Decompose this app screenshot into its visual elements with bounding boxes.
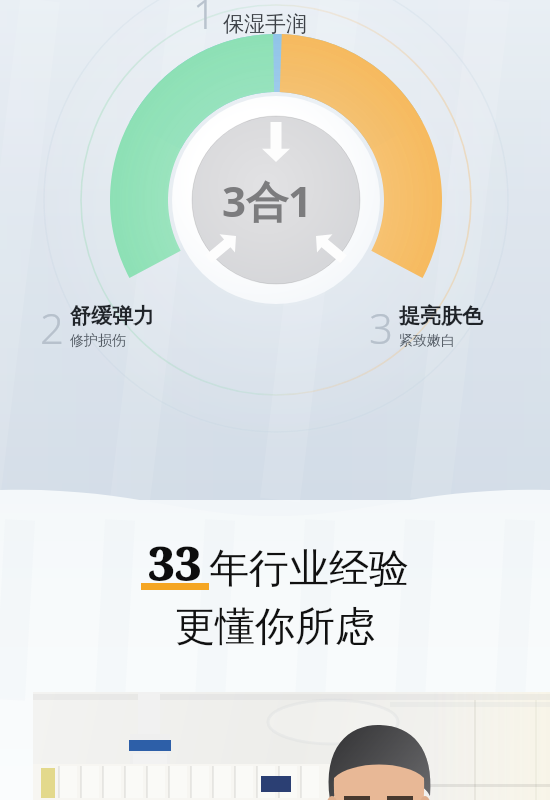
- staticText: 保湿手润: [223, 11, 307, 37]
- button[interactable]: 3: [369, 303, 483, 360]
- staticText: 3合1: [222, 172, 313, 229]
- staticText: 紧致嫩白: [399, 332, 455, 350]
- staticText: 更懂你所虑: [175, 601, 375, 651]
- staticText: 33: [148, 531, 202, 595]
- staticText: 舒缓弹力: [70, 303, 154, 329]
- staticText: 3: [369, 299, 393, 356]
- staticText: 修护损伤: [70, 332, 126, 350]
- staticText: 1: [193, 0, 216, 40]
- button[interactable]: 1: [193, 0, 307, 40]
- staticText: 年行业经验: [209, 543, 409, 593]
- staticText: 2: [40, 299, 64, 356]
- button[interactable]: 2: [40, 303, 154, 360]
- staticText: 提亮肤色: [399, 303, 483, 329]
